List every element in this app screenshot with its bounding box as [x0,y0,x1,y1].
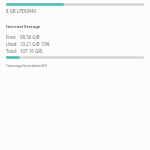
button[interactable]: Internal Storage [0,23,150,70]
staticText: Total: [6,48,20,54]
staticText: /storage/emulated/0 [6,63,47,69]
staticText: Internal Storage [6,24,41,30]
other: Internal storage used 10 percent [6,56,144,59]
staticText: 98.56 GiB [20,34,40,40]
staticText: 107.16 GiB [20,48,43,54]
staticText: Used: [6,41,20,47]
button[interactable]: RAM usage 42 percent [0,0,150,15]
staticText: 8 GB LPDDR4X [6,8,37,14]
staticText: 10.21 GiB 10% [20,41,50,47]
staticText: Free: [6,34,20,40]
other: RAM usage 42 percent [6,3,144,6]
